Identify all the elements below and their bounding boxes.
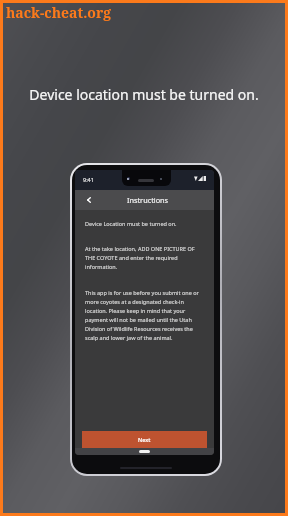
staticText: Next [138, 436, 151, 443]
staticText: Instructions [127, 195, 169, 205]
staticText: At the take location, ADD ONE PICTURE OF… [85, 245, 204, 270]
button[interactable]: Next [82, 431, 207, 448]
staticText: hack-cheat.org [6, 3, 112, 22]
staticText: Device Location must be turned on. [85, 220, 177, 227]
button[interactable]: Back [83, 194, 95, 206]
staticText: Device location must be turned on. [3, 85, 285, 104]
staticText: This app is for use before you submit on… [85, 289, 204, 341]
staticText: 9:41 [83, 176, 94, 183]
